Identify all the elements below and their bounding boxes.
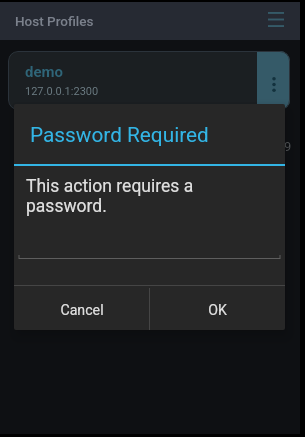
staticText: Cancel — [60, 302, 104, 319]
staticText: 9 — [284, 139, 292, 154]
button[interactable]: Cancel — [14, 288, 149, 330]
staticText: Host Profiles — [15, 13, 94, 29]
staticText: This action requires a password. — [26, 176, 194, 216]
staticText: 127.0.0.1:2300 — [25, 85, 99, 98]
staticText: Password Required — [30, 123, 209, 147]
button[interactable]: OK — [150, 288, 285, 330]
button[interactable]: demo — [8, 51, 290, 110]
button[interactable]: Menu — [264, 2, 300, 40]
staticText: OK — [208, 302, 227, 319]
staticText: demo — [25, 63, 64, 81]
button[interactable]: More options — [257, 51, 290, 110]
